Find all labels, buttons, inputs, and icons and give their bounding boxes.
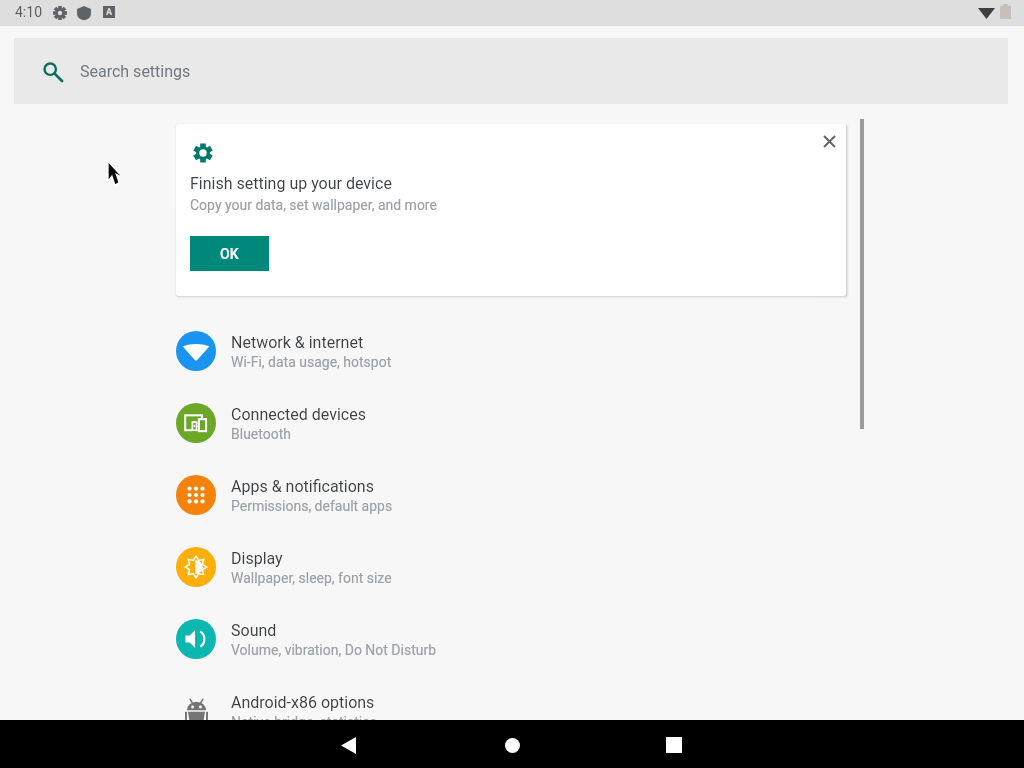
staticText: OK xyxy=(220,246,239,262)
button[interactable]: Dismiss xyxy=(813,125,845,157)
button[interactable]: OK xyxy=(190,236,269,271)
staticText: Sound xyxy=(231,621,277,640)
staticText: Display xyxy=(231,549,283,568)
button[interactable]: Network & internet xyxy=(176,315,846,387)
staticText: A xyxy=(106,7,113,18)
staticText: Permissions, default apps xyxy=(231,498,393,514)
staticText: Volume, vibration, Do Not Disturb xyxy=(231,642,437,658)
staticText: Copy your data, set wallpaper, and more xyxy=(190,197,437,213)
staticText: Bluetooth xyxy=(231,426,291,442)
button[interactable]: Recents xyxy=(657,728,691,762)
staticText: Connected devices xyxy=(231,405,366,424)
button[interactable]: Finish setting up your device xyxy=(176,124,846,296)
staticText: Network & internet xyxy=(231,333,364,352)
button[interactable]: Search settings xyxy=(14,38,1008,104)
staticText: Search settings xyxy=(80,62,191,81)
staticText: Apps & notifications xyxy=(231,477,374,496)
staticText: 4:10 xyxy=(15,4,42,20)
staticText: Android-x86 options xyxy=(231,693,375,712)
button[interactable]: Display xyxy=(176,531,846,603)
button[interactable]: Back xyxy=(331,728,365,762)
button[interactable]: Sound xyxy=(176,603,846,675)
staticText: Wallpaper, sleep, font size xyxy=(231,570,392,586)
staticText: Wi-Fi, data usage, hotspot xyxy=(231,354,392,370)
button[interactable]: Apps & notifications xyxy=(176,459,846,531)
button[interactable]: Android-x86 options xyxy=(176,675,846,747)
button[interactable]: Home xyxy=(495,728,529,762)
button[interactable]: Connected devices xyxy=(176,387,846,459)
staticText: Finish setting up your device xyxy=(190,174,392,193)
staticText: Native bridge, statistics xyxy=(231,714,377,730)
